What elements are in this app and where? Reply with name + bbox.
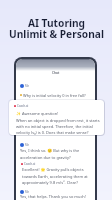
button[interactable]: Coach.ai [9,100,104,135]
staticText: Excellent! 🌟 Gravity pulls objects towar… [22,167,88,185]
button[interactable]: Coach.ai [14,104,29,108]
staticText: Me [25,84,30,88]
staticText: Why is initial velocity 0 in free fall? [23,93,86,98]
staticText: Yes, that helps. Thank you so much! [20,194,86,199]
staticText: Yes, I think so. 🙂 But why is the accele… [20,148,80,160]
button[interactable]: Coach.ai [21,162,36,166]
staticText: Chat [52,71,60,75]
staticText: Coach.ai [17,104,29,108]
staticText: AI Tutoring Unlimit & Personal [9,16,104,41]
staticText: Me [25,143,30,147]
staticText: ✨ Awesome question! When an object is dr… [16,111,100,135]
button[interactable]: Me [20,190,30,194]
button[interactable]: Me [20,143,30,147]
button[interactable]: Me [20,84,30,88]
staticText: Coach.ai [24,162,36,166]
staticText: Me [25,190,30,194]
